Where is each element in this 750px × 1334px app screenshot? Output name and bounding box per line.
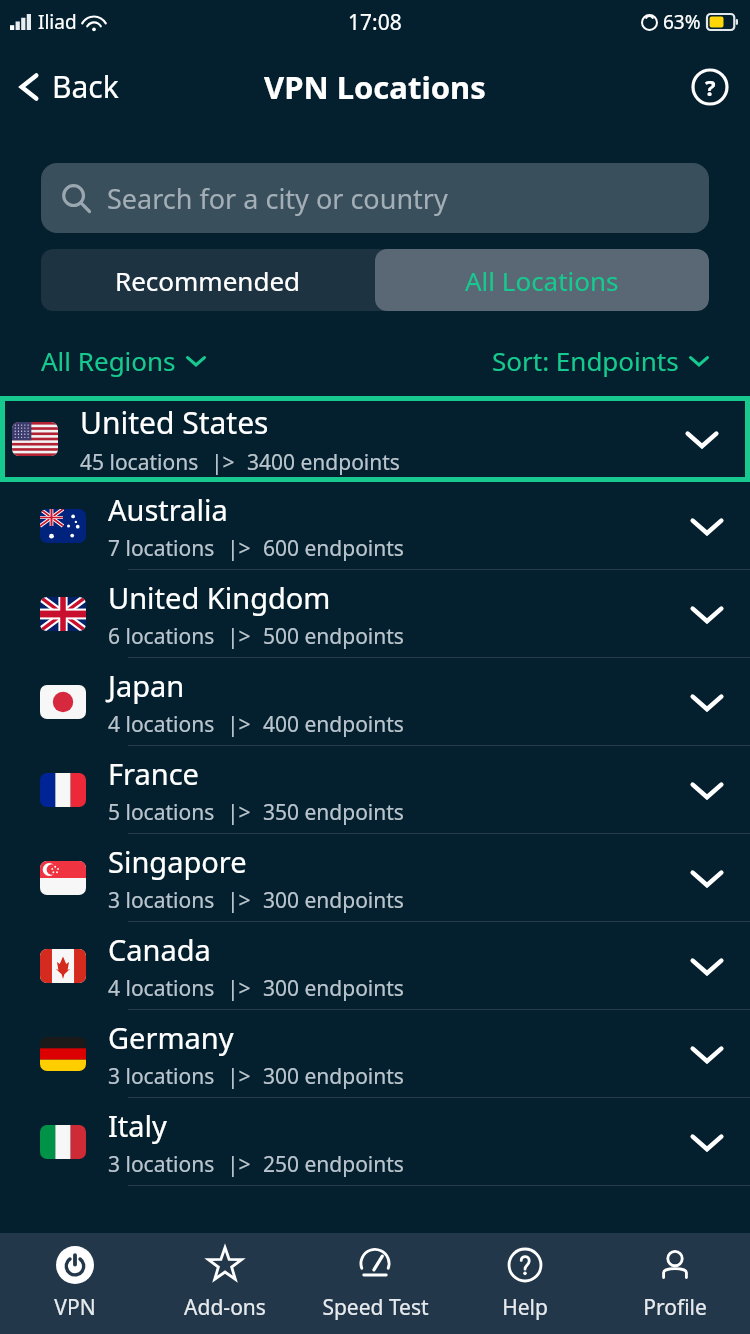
staticText: 600 endpoints [263, 534, 404, 563]
staticText: 300 endpoints [263, 1062, 404, 1091]
button[interactable]: Recommended [41, 249, 375, 311]
button[interactable]: Profile [600, 1233, 750, 1334]
staticText: |> [227, 710, 251, 739]
staticText: 500 endpoints [263, 622, 404, 651]
button[interactable]: Italy [0, 1098, 750, 1186]
staticText: ? [705, 72, 716, 102]
button[interactable]: Sort: Endpoints [492, 343, 709, 378]
button[interactable]: United States [0, 396, 750, 482]
staticText: Speed Test [322, 1293, 429, 1322]
staticText: France [108, 754, 199, 793]
staticText: Canada [108, 930, 211, 969]
staticText: United States [80, 402, 269, 443]
staticText: Back [52, 66, 119, 107]
staticText: 5 locations [108, 798, 215, 827]
staticText: Iliad [38, 9, 77, 35]
staticText: 300 endpoints [263, 886, 404, 915]
button[interactable]: Search for a city or country [41, 163, 709, 233]
staticText: 6 locations [108, 622, 215, 651]
staticText: 45 locations [80, 448, 199, 477]
staticText: Profile [643, 1293, 707, 1322]
staticText: United Kingdom [108, 578, 331, 617]
button[interactable]: VPN [0, 1233, 150, 1334]
staticText: 17:08 [348, 8, 402, 37]
staticText: 3 locations [108, 1062, 215, 1091]
button[interactable]: Help [450, 1233, 600, 1334]
button[interactable]: All Locations [375, 249, 709, 311]
button[interactable]: Add-ons [150, 1233, 300, 1334]
button[interactable]: Canada [0, 922, 750, 1010]
staticText: Add-ons [184, 1293, 266, 1322]
staticText: |> [227, 974, 251, 1003]
staticText: 400 endpoints [263, 710, 404, 739]
staticText: All Regions [41, 343, 176, 378]
staticText: 250 endpoints [263, 1150, 404, 1179]
button[interactable]: Germany [0, 1010, 750, 1098]
button[interactable]: Singapore [0, 834, 750, 922]
staticText: 63% [663, 9, 701, 35]
staticText: 300 endpoints [263, 974, 404, 1003]
button[interactable]: Speed Test [300, 1233, 450, 1334]
staticText: VPN [54, 1293, 96, 1322]
staticText: |> [227, 1062, 251, 1091]
staticText: Recommended [115, 263, 301, 298]
staticText: 7 locations [108, 534, 215, 563]
staticText: |> [227, 798, 251, 827]
staticText: Help [502, 1293, 548, 1322]
staticText: 3400 endpoints [247, 448, 400, 477]
staticText: Germany [108, 1018, 234, 1057]
staticText: Singapore [108, 842, 247, 881]
button[interactable]: Back [0, 58, 135, 115]
staticText: |> [227, 534, 251, 563]
button[interactable]: Japan [0, 658, 750, 746]
staticText: Sort: Endpoints [492, 343, 679, 378]
button[interactable]: Help [686, 63, 734, 111]
staticText: Australia [108, 490, 228, 529]
staticText: |> [227, 622, 251, 651]
staticText: 3 locations [108, 1150, 215, 1179]
staticText: 3 locations [108, 886, 215, 915]
staticText: 4 locations [108, 974, 215, 1003]
staticText: 4 locations [108, 710, 215, 739]
staticText: |> [227, 1150, 251, 1179]
button[interactable]: All Regions [41, 343, 206, 378]
button[interactable]: United Kingdom [0, 570, 750, 658]
staticText: Italy [108, 1106, 167, 1145]
button[interactable]: Australia [0, 482, 750, 570]
staticText: Search for a city or country [107, 180, 448, 217]
staticText: |> [211, 448, 235, 477]
button[interactable]: France [0, 746, 750, 834]
staticText: Japan [108, 666, 185, 705]
staticText: VPN Locations [264, 66, 486, 108]
staticText: All Locations [465, 263, 619, 298]
staticText: 350 endpoints [263, 798, 404, 827]
staticText: |> [227, 886, 251, 915]
